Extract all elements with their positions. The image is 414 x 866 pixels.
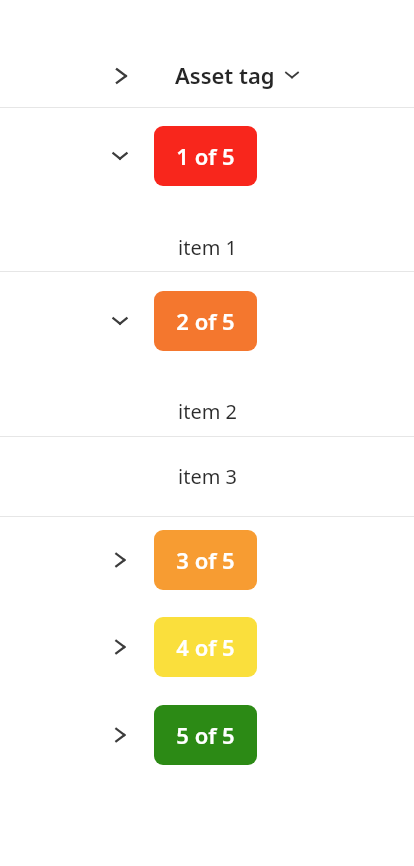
button[interactable]: Expand [109,636,131,658]
button[interactable]: 3 of 5 [154,530,257,590]
staticText: item 1 [178,234,237,261]
staticText: 1 of 5 [176,141,235,171]
button[interactable]: Expand [0,517,414,604]
staticText: 2 of 5 [176,306,235,336]
button[interactable]: Expand [0,604,414,692]
staticText: 3 of 5 [176,545,235,575]
button[interactable]: Expand [109,549,131,571]
button[interactable]: Expand [109,724,131,746]
button[interactable]: Collapse [0,108,414,271]
button[interactable]: Expand [0,0,414,107]
button[interactable]: Collapse [0,272,414,436]
button[interactable]: Expand [0,692,414,780]
button[interactable]: 2 of 5 [154,291,257,351]
button[interactable]: Collapse [109,145,131,167]
button[interactable]: Expand [109,64,133,88]
button[interactable]: Sort [281,64,303,86]
button[interactable]: 5 of 5 [154,705,257,765]
button[interactable]: item 3 [0,437,414,516]
button[interactable]: Collapse [109,310,131,332]
staticText: item 2 [178,398,237,425]
staticText: item 3 [178,463,237,490]
button[interactable]: 1 of 5 [154,126,257,186]
staticText: 5 of 5 [176,720,235,750]
button[interactable]: 4 of 5 [154,617,257,677]
staticText: 4 of 5 [176,632,235,662]
staticText: Asset tag [175,60,275,90]
